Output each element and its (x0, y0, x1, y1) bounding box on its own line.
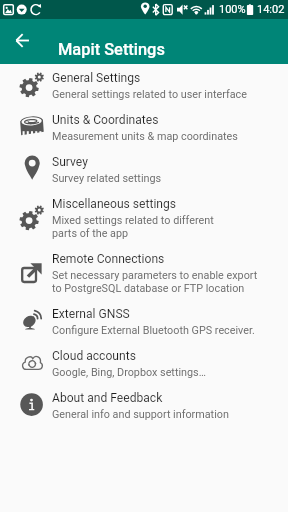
button[interactable]: General Settings (0, 64, 288, 106)
staticText: Mapit Settings (58, 40, 165, 59)
staticText: General Settings (52, 71, 141, 85)
button[interactable]: External GNSS (0, 300, 288, 342)
button[interactable]: About and Feedback (0, 384, 288, 426)
button[interactable]: Remote Connections (0, 245, 288, 300)
staticText: Remote Connections (52, 252, 165, 266)
button[interactable]: Units & Coordinates (0, 106, 288, 148)
staticText: Miscellaneous settings (52, 197, 177, 211)
staticText: Google, Bing, Dropbox settings… (52, 366, 206, 379)
staticText: Set necessary parameters to enable expor… (52, 269, 258, 282)
button[interactable]: Cloud accounts (0, 342, 288, 384)
staticText: General settings related to user interfa… (52, 88, 247, 101)
staticText: parts of the app (52, 227, 129, 240)
staticText: General info and support information (52, 408, 229, 421)
staticText: Survey related settings (52, 172, 162, 185)
staticText: Cloud accounts (52, 349, 136, 363)
staticText: Configure External Bluetooth GPS receive… (52, 324, 255, 337)
staticText: External GNSS (52, 307, 130, 321)
staticText: 100% (219, 3, 246, 16)
button[interactable]: Navigate up (10, 28, 35, 53)
staticText: Survey (52, 155, 88, 169)
staticText: Measurement units & map coordinates (52, 130, 238, 143)
staticText: 14:02 (257, 3, 285, 16)
staticText: Mixed settings related to different (52, 214, 214, 227)
staticText: to PostgreSQL database or FTP location (52, 282, 245, 295)
staticText: Units & Coordinates (52, 113, 159, 127)
staticText: About and Feedback (52, 391, 163, 405)
button[interactable]: Survey (0, 148, 288, 190)
button[interactable]: Miscellaneous settings (0, 190, 288, 245)
